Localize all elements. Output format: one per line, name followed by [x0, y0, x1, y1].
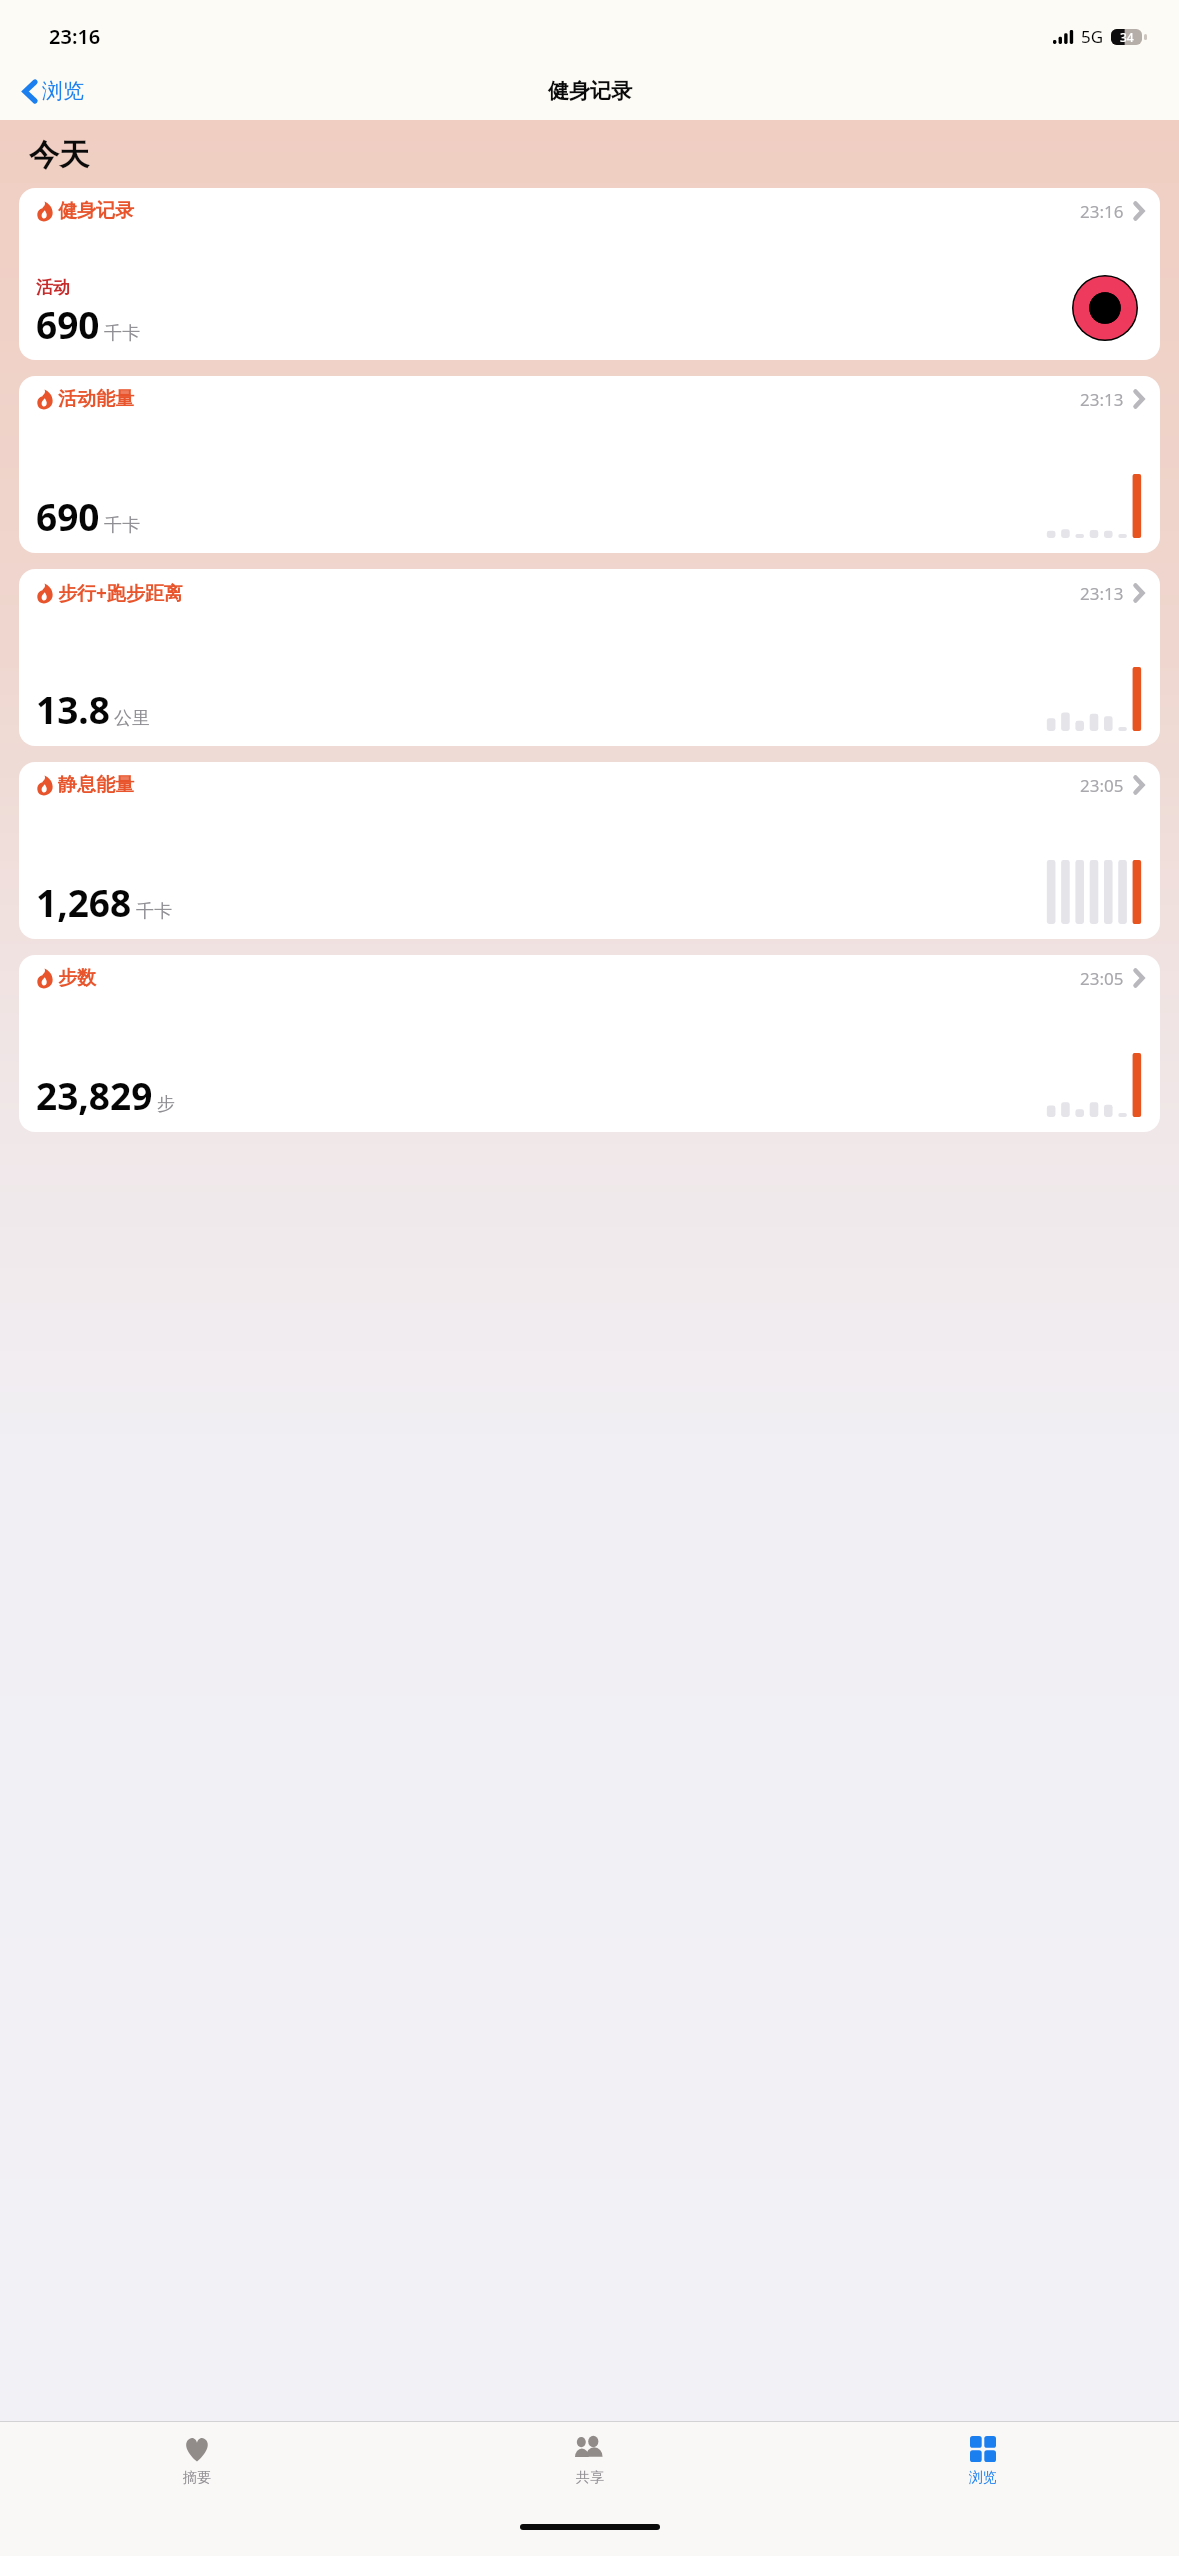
staticText: 今天: [29, 136, 89, 174]
staticText: 千卡: [104, 514, 140, 537]
staticText: 活动: [36, 277, 70, 298]
staticText: 共享: [576, 2469, 604, 2487]
staticText: 活动能量: [58, 387, 134, 411]
staticText: 690: [36, 491, 100, 541]
staticText: 690: [36, 299, 100, 349]
staticText: 摘要: [183, 2469, 211, 2487]
staticText: 23:13: [1080, 388, 1124, 411]
button[interactable]: 步数: [19, 955, 1160, 1132]
staticText: 13.8: [36, 684, 110, 734]
staticText: 静息能量: [58, 773, 134, 797]
staticText: 步数: [58, 966, 96, 990]
staticText: 23:05: [1080, 774, 1124, 797]
staticText: 步: [157, 1093, 175, 1116]
staticText: 千卡: [104, 322, 140, 345]
staticText: 23:13: [1080, 582, 1124, 605]
button[interactable]: 浏览: [18, 72, 90, 110]
staticText: 千卡: [136, 900, 172, 923]
button[interactable]: 浏览: [786, 2422, 1179, 2514]
button[interactable]: 健身记录: [19, 188, 1160, 360]
staticText: 步行+跑步距离: [58, 580, 183, 606]
staticText: 23,829: [36, 1070, 153, 1120]
staticText: 健身记录: [58, 199, 134, 223]
staticText: 健身记录: [548, 78, 632, 104]
staticText: 浏览: [42, 78, 84, 104]
staticText: 23:05: [1080, 967, 1124, 990]
staticText: 23:16: [49, 23, 101, 50]
button[interactable]: 共享: [393, 2422, 786, 2514]
button[interactable]: 步行+跑步距离: [19, 569, 1160, 746]
staticText: 34: [1120, 29, 1134, 45]
button[interactable]: 活动能量: [19, 376, 1160, 553]
button[interactable]: 摘要: [0, 2422, 393, 2514]
button[interactable]: 静息能量: [19, 762, 1160, 939]
staticText: 公里: [114, 707, 150, 730]
staticText: 1,268: [36, 877, 132, 927]
staticText: 5G: [1081, 25, 1104, 48]
staticText: 23:16: [1080, 200, 1124, 223]
staticText: 浏览: [969, 2469, 997, 2487]
